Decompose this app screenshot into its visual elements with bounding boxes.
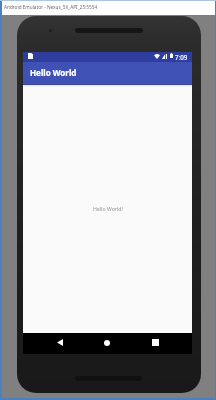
staticText: 7:09 [175,53,188,61]
button[interactable]: Recents [141,333,189,354]
staticText: Hello World! [93,205,123,212]
button[interactable]: Home [93,333,141,354]
staticText: Android Emulator - Nexus_5X_API_25:5554 [4,4,98,10]
staticText: Hello World [30,67,77,78]
button[interactable]: Back [45,333,91,354]
